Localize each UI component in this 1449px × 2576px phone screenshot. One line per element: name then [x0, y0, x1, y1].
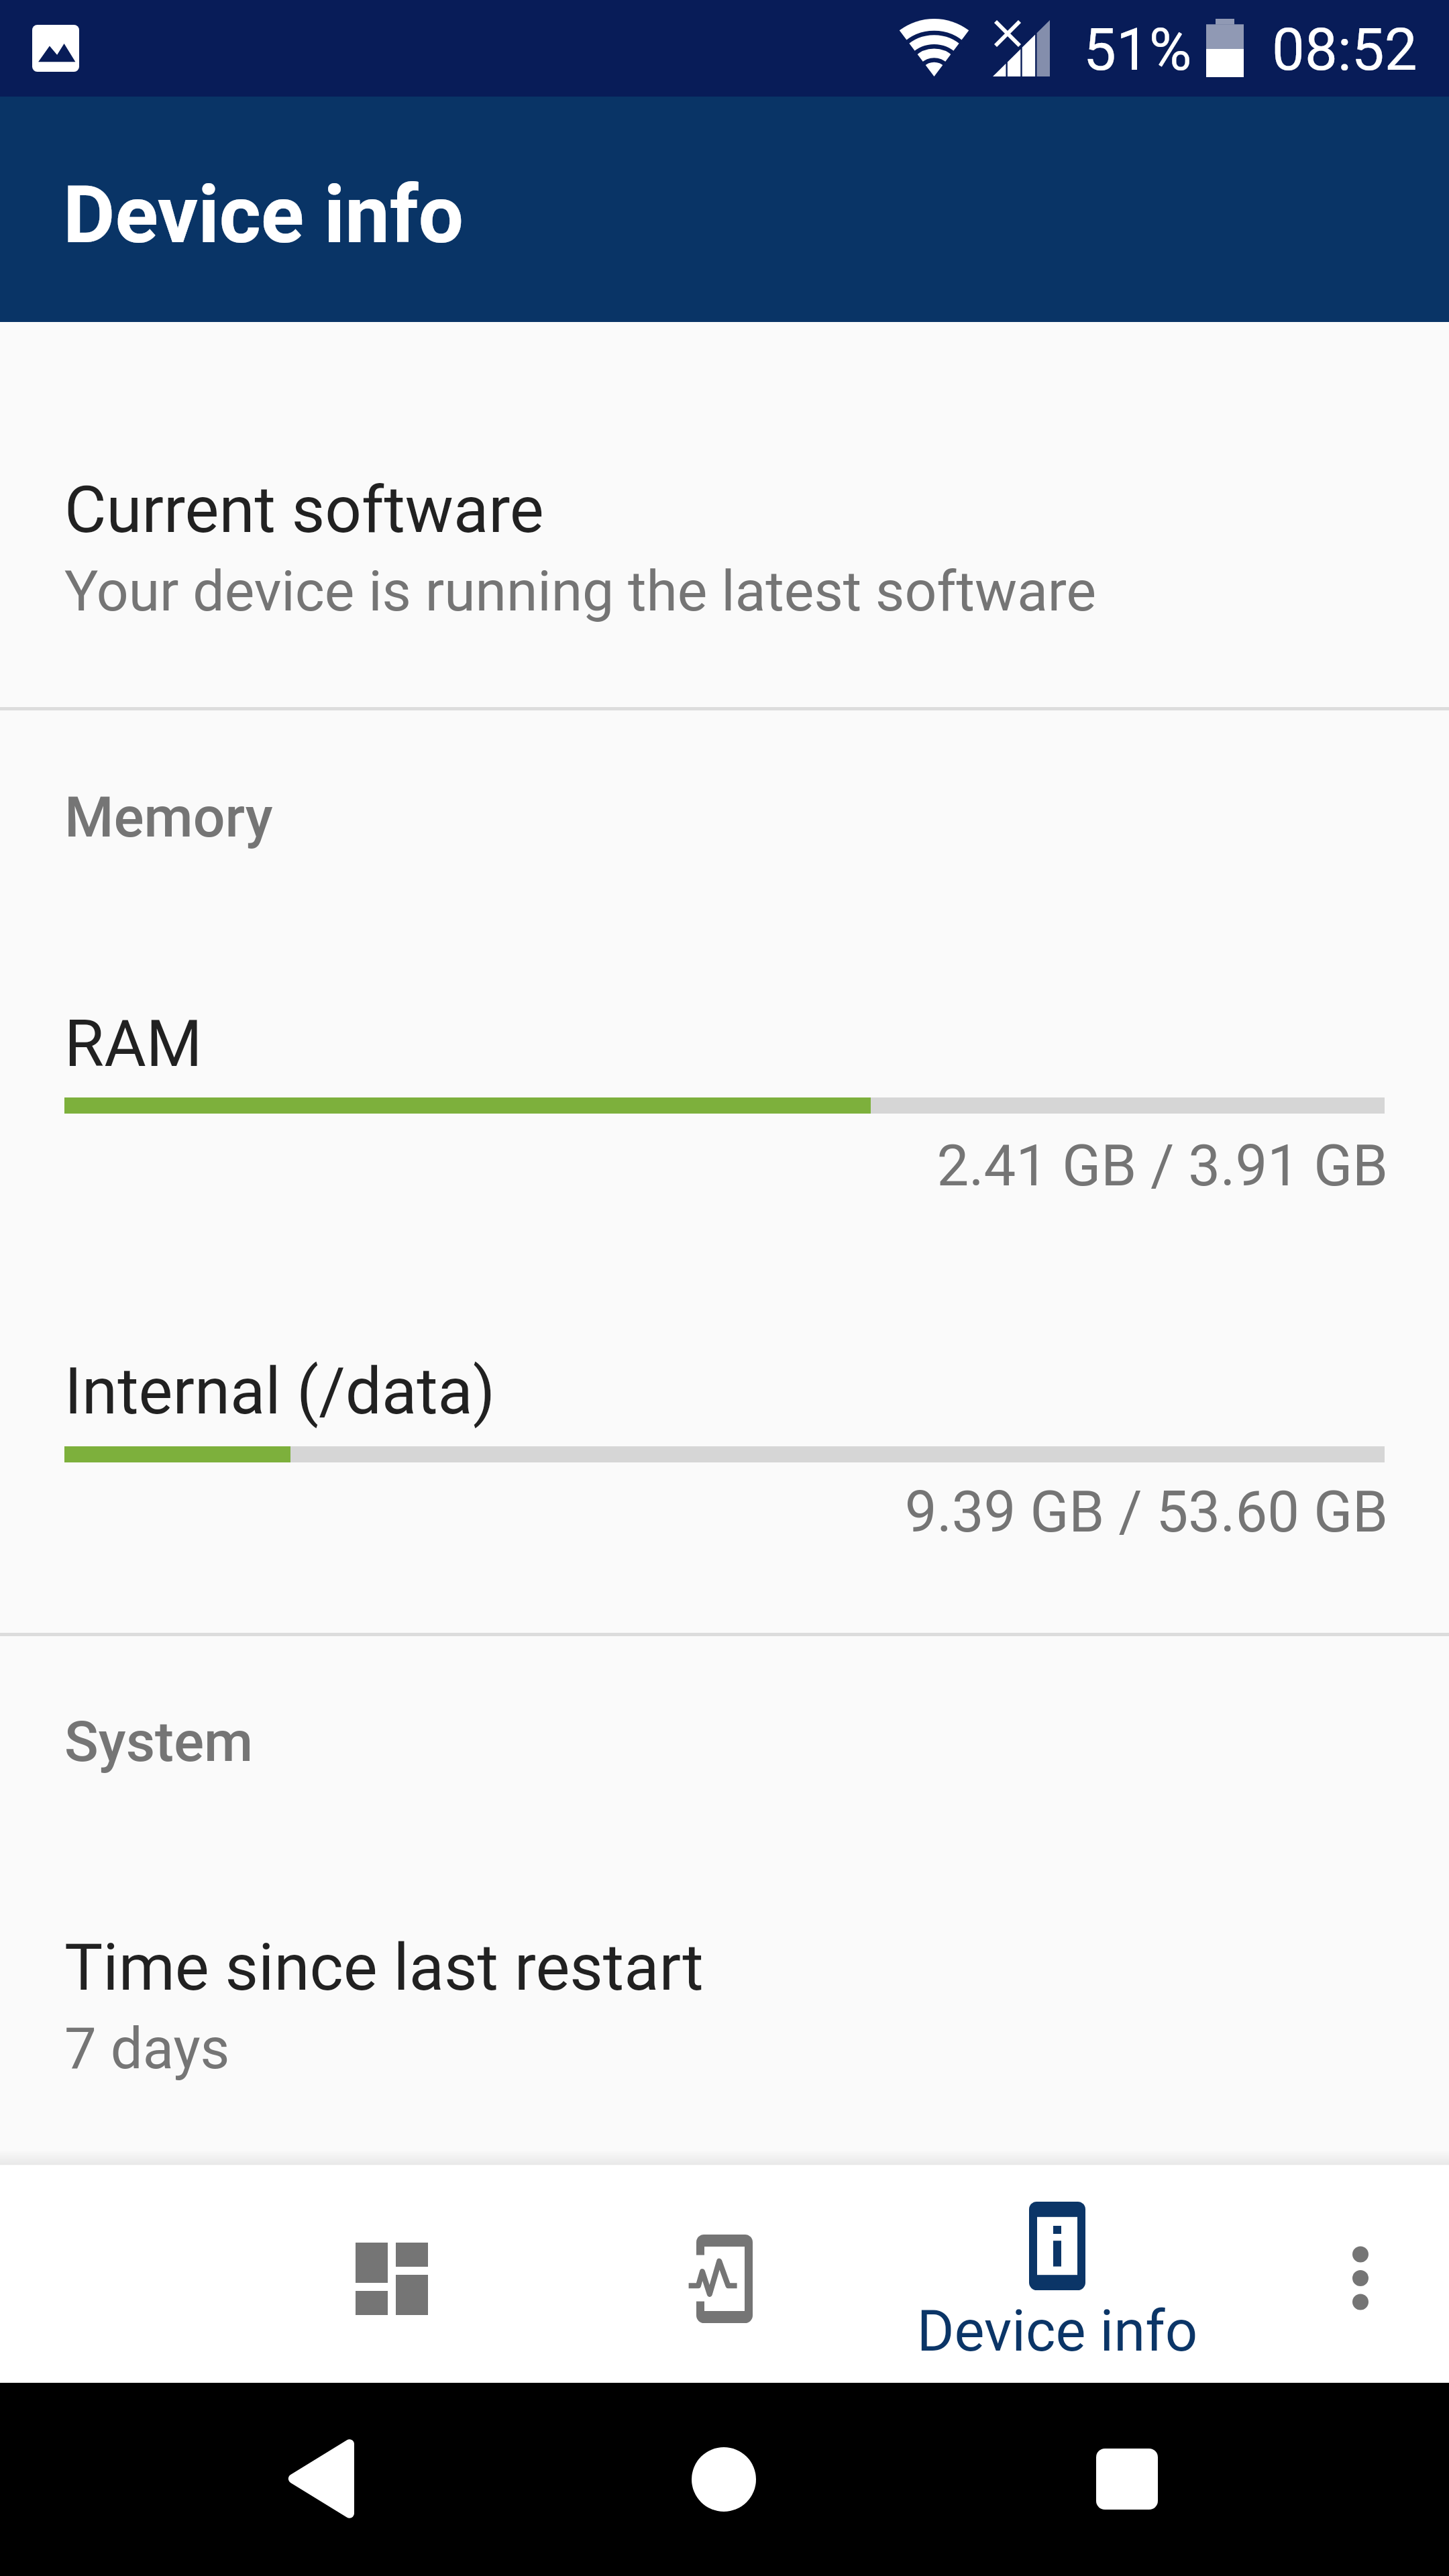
button[interactable]: RAM	[0, 939, 1449, 1228]
staticText: Time since last restart	[64, 1930, 704, 2006]
button[interactable]: More options	[1253, 2165, 1449, 2383]
staticText: Current software	[64, 472, 544, 548]
staticText: Internal (/data)	[64, 1354, 496, 1430]
button[interactable]: Time since last restart	[0, 1872, 1449, 2160]
button[interactable]: Dashboard	[284, 2165, 499, 2383]
button[interactable]: Back	[225, 2383, 419, 2576]
staticText: 2.41 GB / 3.91 GB	[64, 1132, 1388, 1199]
button[interactable]: Device monitoring	[617, 2165, 832, 2383]
staticText: System	[64, 1709, 254, 1774]
button[interactable]: Current software	[0, 416, 1449, 707]
staticText: 9.39 GB / 53.60 GB	[64, 1479, 1388, 1546]
staticText: Memory	[64, 784, 273, 850]
button[interactable]: Internal (/data)	[0, 1288, 1449, 1576]
staticText: Device info	[883, 2298, 1232, 2365]
staticText: 08:52	[1272, 15, 1417, 84]
button[interactable]: Home	[627, 2383, 820, 2576]
button[interactable]: Device info	[883, 2165, 1232, 2383]
staticText: Your device is running the latest softwa…	[64, 558, 1097, 624]
staticText: Device info	[63, 168, 464, 262]
staticText: RAM	[64, 1006, 203, 1082]
staticText: 7 days	[64, 2015, 230, 2082]
staticText: 51%	[1083, 15, 1192, 84]
button[interactable]: Recent apps	[1030, 2383, 1224, 2576]
